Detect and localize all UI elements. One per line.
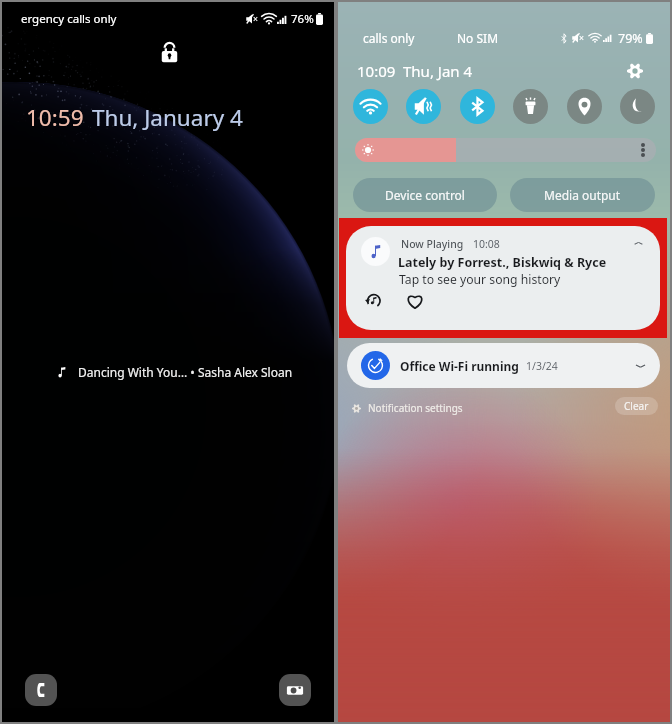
button[interactable]: Media output bbox=[510, 178, 655, 212]
button[interactable]: Wi-Fi bbox=[353, 89, 388, 124]
button[interactable]: Location bbox=[567, 89, 602, 124]
staticText: 10:59 bbox=[26, 102, 84, 133]
staticText: Tap to see your song history bbox=[399, 271, 561, 288]
button[interactable]: Device control bbox=[353, 178, 497, 212]
staticText: 79% bbox=[618, 30, 643, 47]
button[interactable]: Camera bbox=[279, 674, 311, 706]
staticText: 10:09 bbox=[357, 61, 396, 81]
button[interactable]: Bluetooth bbox=[460, 89, 495, 124]
staticText: ergency calls only bbox=[21, 11, 117, 27]
staticText: calls only bbox=[363, 30, 415, 46]
button[interactable]: Brightness bbox=[355, 138, 656, 162]
button[interactable]: Collapse bbox=[627, 232, 649, 254]
staticText: 76% bbox=[291, 11, 314, 27]
staticText: No SIM bbox=[457, 30, 499, 46]
staticText: 10:08 bbox=[473, 237, 500, 251]
button[interactable]: Mute bbox=[406, 89, 441, 124]
button[interactable]: Favourite bbox=[403, 289, 426, 312]
button[interactable]: Clear bbox=[615, 397, 658, 415]
staticText: Now Playing bbox=[401, 237, 464, 251]
staticText: Dancing With You… • Sasha Alex Sloan bbox=[78, 364, 293, 380]
staticText: Media output bbox=[544, 187, 621, 203]
other: Locked bbox=[161, 42, 178, 63]
button[interactable]: Phone bbox=[25, 674, 57, 706]
button[interactable]: Dark mode bbox=[620, 89, 655, 124]
button[interactable]: Flashlight bbox=[513, 89, 548, 124]
button[interactable]: Office Wi-Fi running bbox=[347, 343, 660, 388]
button[interactable]: Settings bbox=[621, 57, 648, 84]
staticText: Notification settings bbox=[368, 401, 463, 415]
staticText: Lately by Forrest., Biskwiq & Ryce bbox=[398, 254, 607, 271]
staticText: Thu, January 4 bbox=[92, 102, 243, 133]
staticText: Clear bbox=[624, 399, 649, 413]
staticText: 1/3/24 bbox=[526, 359, 558, 373]
button[interactable]: Song history bbox=[361, 289, 384, 312]
staticText: Office Wi-Fi running bbox=[400, 358, 519, 374]
button[interactable]: Now Playing bbox=[346, 226, 660, 330]
staticText: Thu, Jan 4 bbox=[403, 61, 473, 81]
staticText: Device control bbox=[385, 187, 465, 203]
button[interactable]: Notification settings bbox=[352, 398, 463, 418]
